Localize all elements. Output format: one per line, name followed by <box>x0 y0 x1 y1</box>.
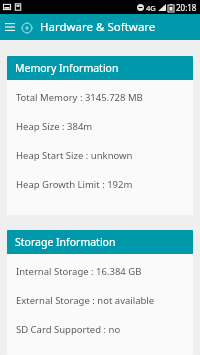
staticText: Storage Information <box>15 235 116 249</box>
button[interactable]: Memory Information <box>7 56 193 80</box>
button[interactable]: External Storage : not available <box>7 294 193 323</box>
button[interactable]: Open navigation drawer <box>3 20 17 34</box>
button[interactable]: Storage Information <box>7 230 193 254</box>
staticText: Hardware & Software <box>40 19 156 35</box>
button[interactable]: App icon <box>19 20 34 35</box>
button[interactable]: Total Memory : 3145.728 MB <box>7 91 193 120</box>
staticText: 4G <box>146 3 156 13</box>
staticText: Heap Growth Limit : 192m <box>16 178 133 191</box>
button[interactable]: Heap Growth Limit : 192m <box>7 178 193 207</box>
button[interactable]: Heap Size : 384m <box>7 120 193 149</box>
staticText: 20:18 <box>176 2 197 13</box>
button[interactable]: Heap Start Size : unknown <box>7 149 193 178</box>
button[interactable]: Internal Storage : 16.384 GB <box>7 265 193 294</box>
staticText: SD Card Supported : no <box>16 323 121 336</box>
staticText: Memory Information <box>15 61 119 75</box>
staticText: External Storage : not available <box>16 294 155 307</box>
staticText: Heap Start Size : unknown <box>16 149 133 162</box>
staticText: Total Memory : 3145.728 MB <box>16 91 143 104</box>
staticText: Internal Storage : 16.384 GB <box>16 265 142 278</box>
button[interactable]: SD Card Supported : no <box>7 323 193 347</box>
staticText: Heap Size : 384m <box>16 120 93 133</box>
